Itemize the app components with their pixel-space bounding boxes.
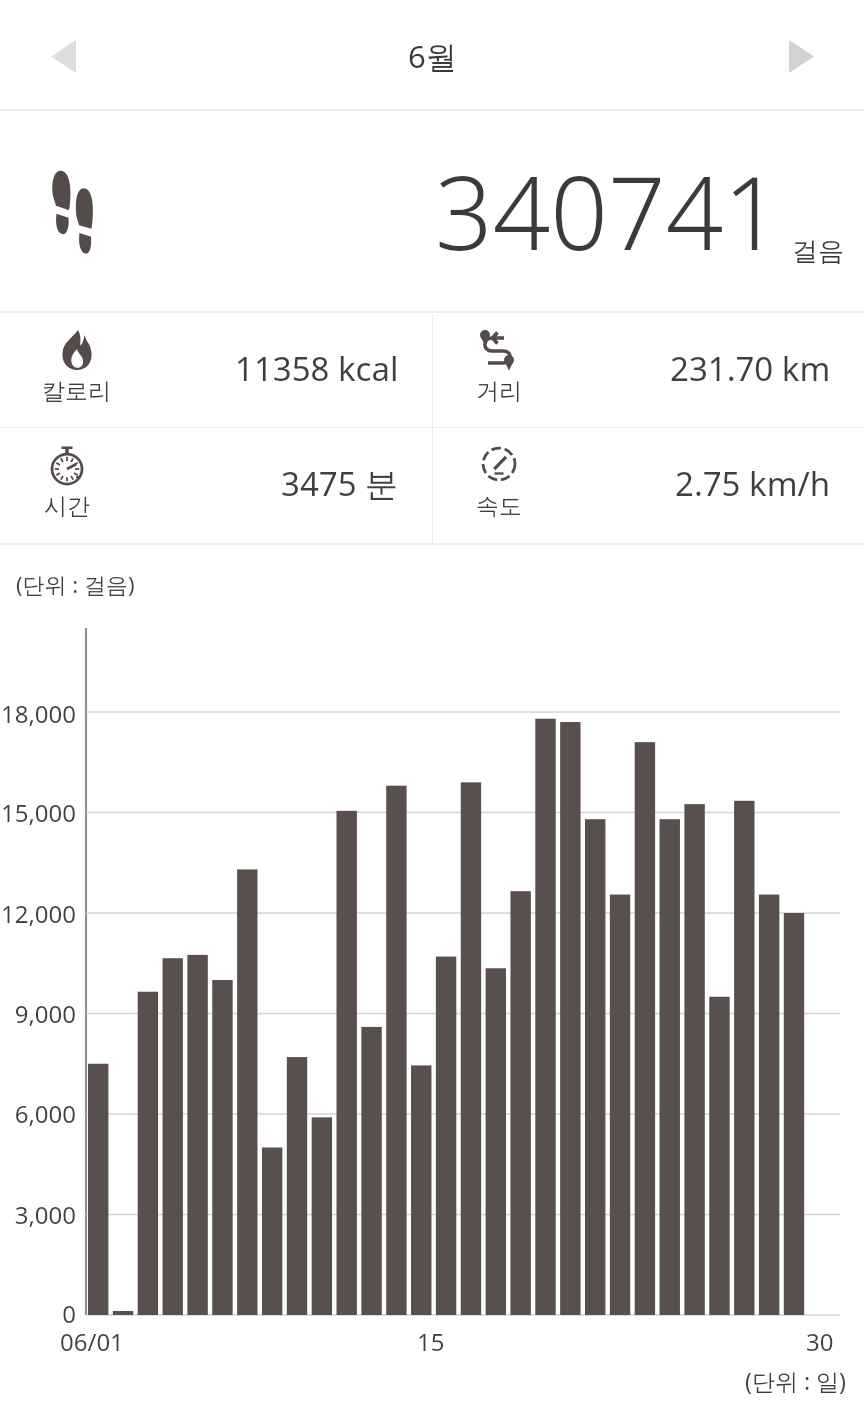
staticText: 15,000 [0, 796, 76, 829]
staticText: 3475 분 [281, 461, 399, 506]
staticText: 시간 [44, 492, 90, 521]
staticText: 0 [0, 1297, 76, 1330]
staticText: 30 [806, 1325, 834, 1358]
staticText: 6월 [408, 35, 457, 77]
staticText: 6,000 [0, 1097, 76, 1130]
staticText: (단위 : 걸음) [16, 569, 135, 599]
staticText: 거리 [476, 377, 522, 406]
button[interactable]: 340741 [0, 111, 864, 311]
staticText: 231.70 km [670, 346, 831, 391]
staticText: 12,000 [0, 897, 76, 930]
staticText: 속도 [476, 492, 522, 521]
staticText: 3,000 [0, 1198, 76, 1231]
staticText: 340741 [435, 142, 782, 280]
staticText: 2.75 km/h [675, 461, 831, 506]
button[interactable]: 속도 [432, 428, 864, 542]
button[interactable]: 거리 [432, 313, 864, 427]
staticText: 15 [417, 1325, 445, 1358]
staticText: 11358 kcal [235, 346, 399, 391]
button[interactable]: 6월 [408, 35, 457, 77]
staticText: 칼로리 [42, 377, 111, 406]
staticText: 06/01 [60, 1325, 124, 1358]
button[interactable]: 시간 [0, 428, 432, 542]
button[interactable]: 이전 달 [18, 11, 108, 101]
button[interactable]: 다음 달 [756, 11, 846, 101]
staticText: 18,000 [0, 697, 76, 730]
staticText: 9,000 [0, 997, 76, 1030]
button[interactable] [0, 545, 864, 1403]
staticText: (단위 : 일) [745, 1365, 846, 1396]
button[interactable]: 칼로리 [0, 313, 432, 427]
staticText: 걸음 [792, 235, 844, 268]
